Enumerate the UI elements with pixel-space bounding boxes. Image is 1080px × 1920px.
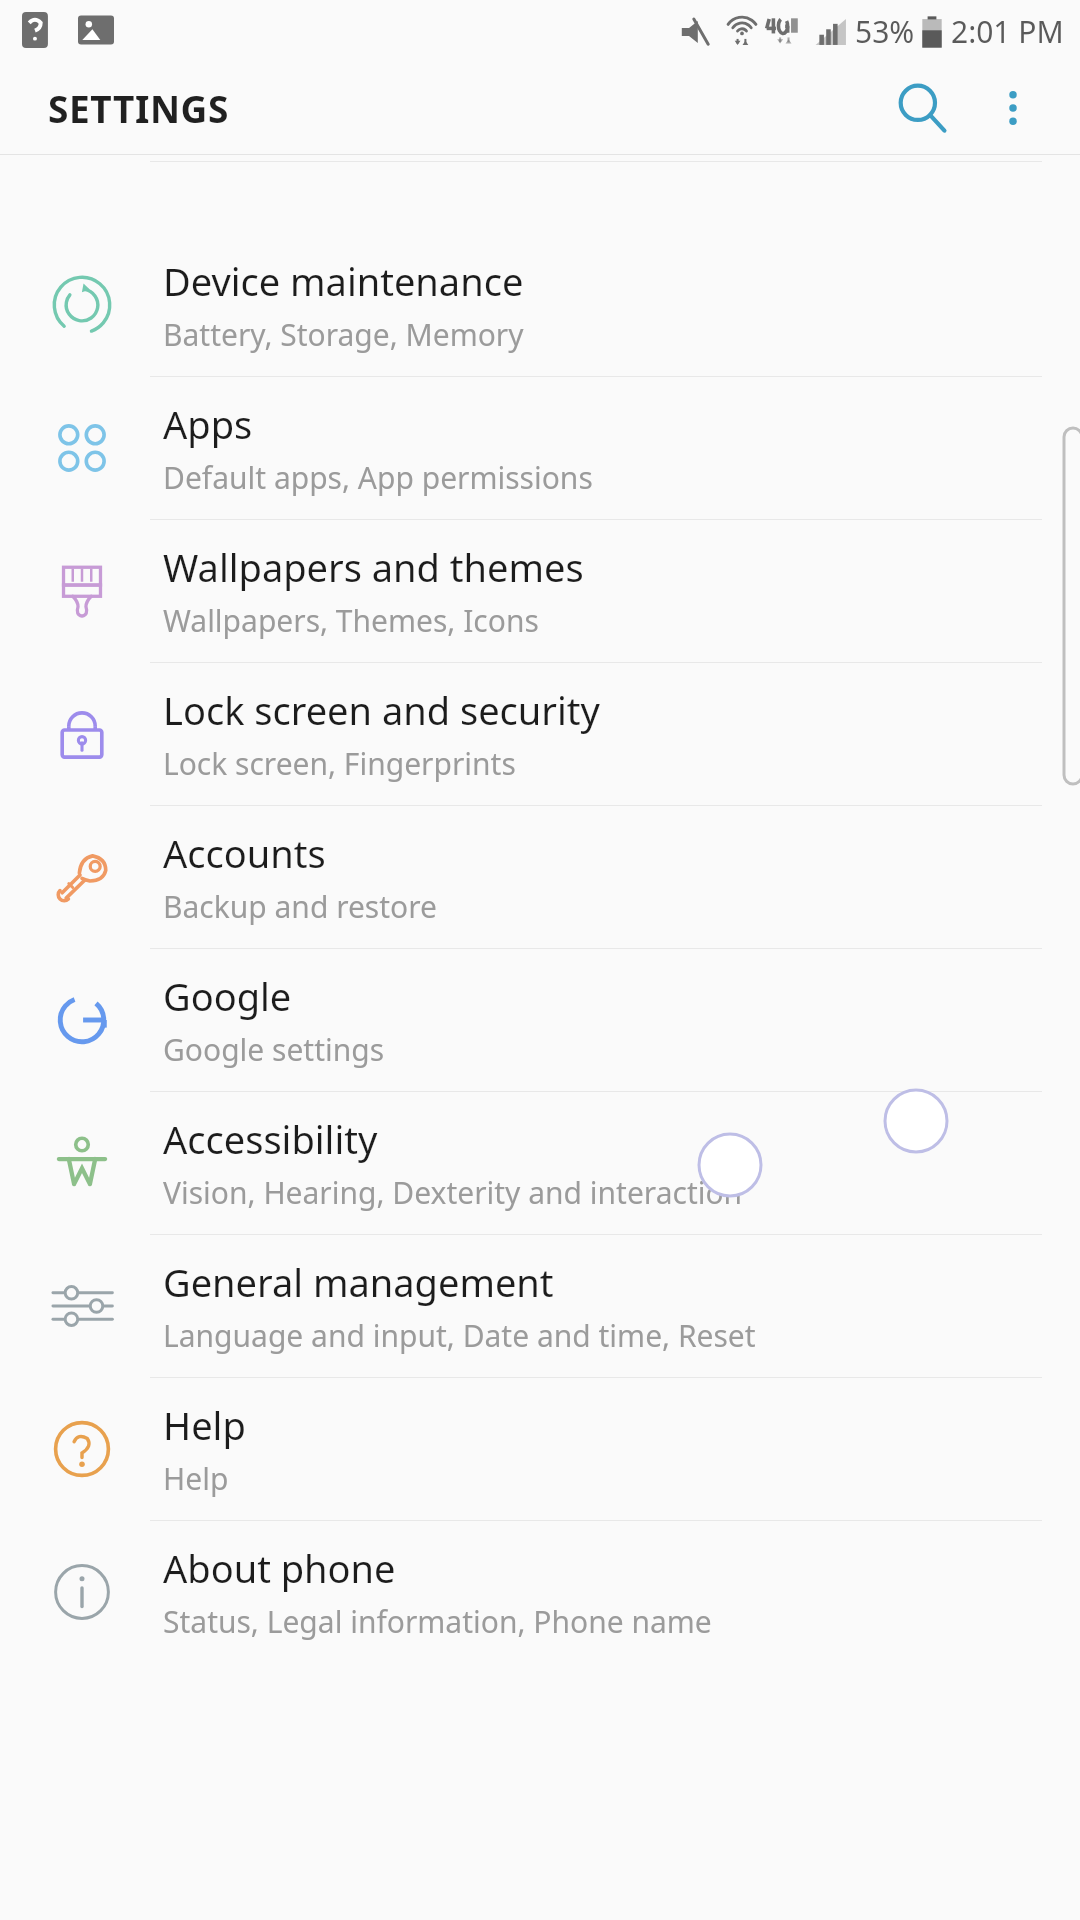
staticText: Lock screen and security (163, 684, 600, 736)
staticText: Accounts (163, 827, 326, 879)
staticText: Google (163, 970, 292, 1022)
staticText: Vision, Hearing, Dexterity and interacti… (163, 1172, 743, 1213)
staticText: Wallpapers, Themes, Icons (163, 600, 539, 641)
button[interactable]: About phone (0, 1520, 1080, 1663)
staticText: SETTINGS (48, 83, 229, 133)
staticText: Backup and restore (163, 886, 437, 927)
staticText: Apps (163, 398, 253, 450)
button[interactable]: Accounts (0, 805, 1080, 948)
staticText: Google settings (163, 1029, 385, 1070)
staticText: General management (163, 1256, 554, 1308)
button[interactable]: Search (874, 62, 970, 154)
staticText: Lock screen, Fingerprints (163, 743, 516, 784)
button[interactable]: Accessibility (0, 1091, 1080, 1234)
staticText: Wallpapers and themes (163, 541, 584, 593)
button[interactable]: More options (970, 65, 1056, 151)
staticText: 53% (855, 11, 915, 52)
staticText: Help (163, 1458, 229, 1499)
staticText: Battery, Storage, Memory (163, 314, 524, 355)
button[interactable]: Help (0, 1377, 1080, 1520)
staticText: Accessibility (163, 1113, 378, 1165)
staticText: Status, Legal information, Phone name (163, 1601, 712, 1642)
button[interactable]: Wallpapers and themes (0, 519, 1080, 662)
button[interactable]: Device maintenance (0, 233, 1080, 376)
staticText: Default apps, App permissions (163, 457, 593, 498)
button[interactable]: Apps (0, 376, 1080, 519)
staticText: 2:01 PM (951, 11, 1064, 52)
button[interactable]: Lock screen and security (0, 662, 1080, 805)
staticText: Device maintenance (163, 255, 524, 307)
staticText: Language and input, Date and time, Reset (163, 1315, 756, 1356)
button[interactable]: General management (0, 1234, 1080, 1377)
button[interactable]: Google (0, 948, 1080, 1091)
staticText: Help (163, 1399, 246, 1451)
staticText: About phone (163, 1542, 396, 1594)
